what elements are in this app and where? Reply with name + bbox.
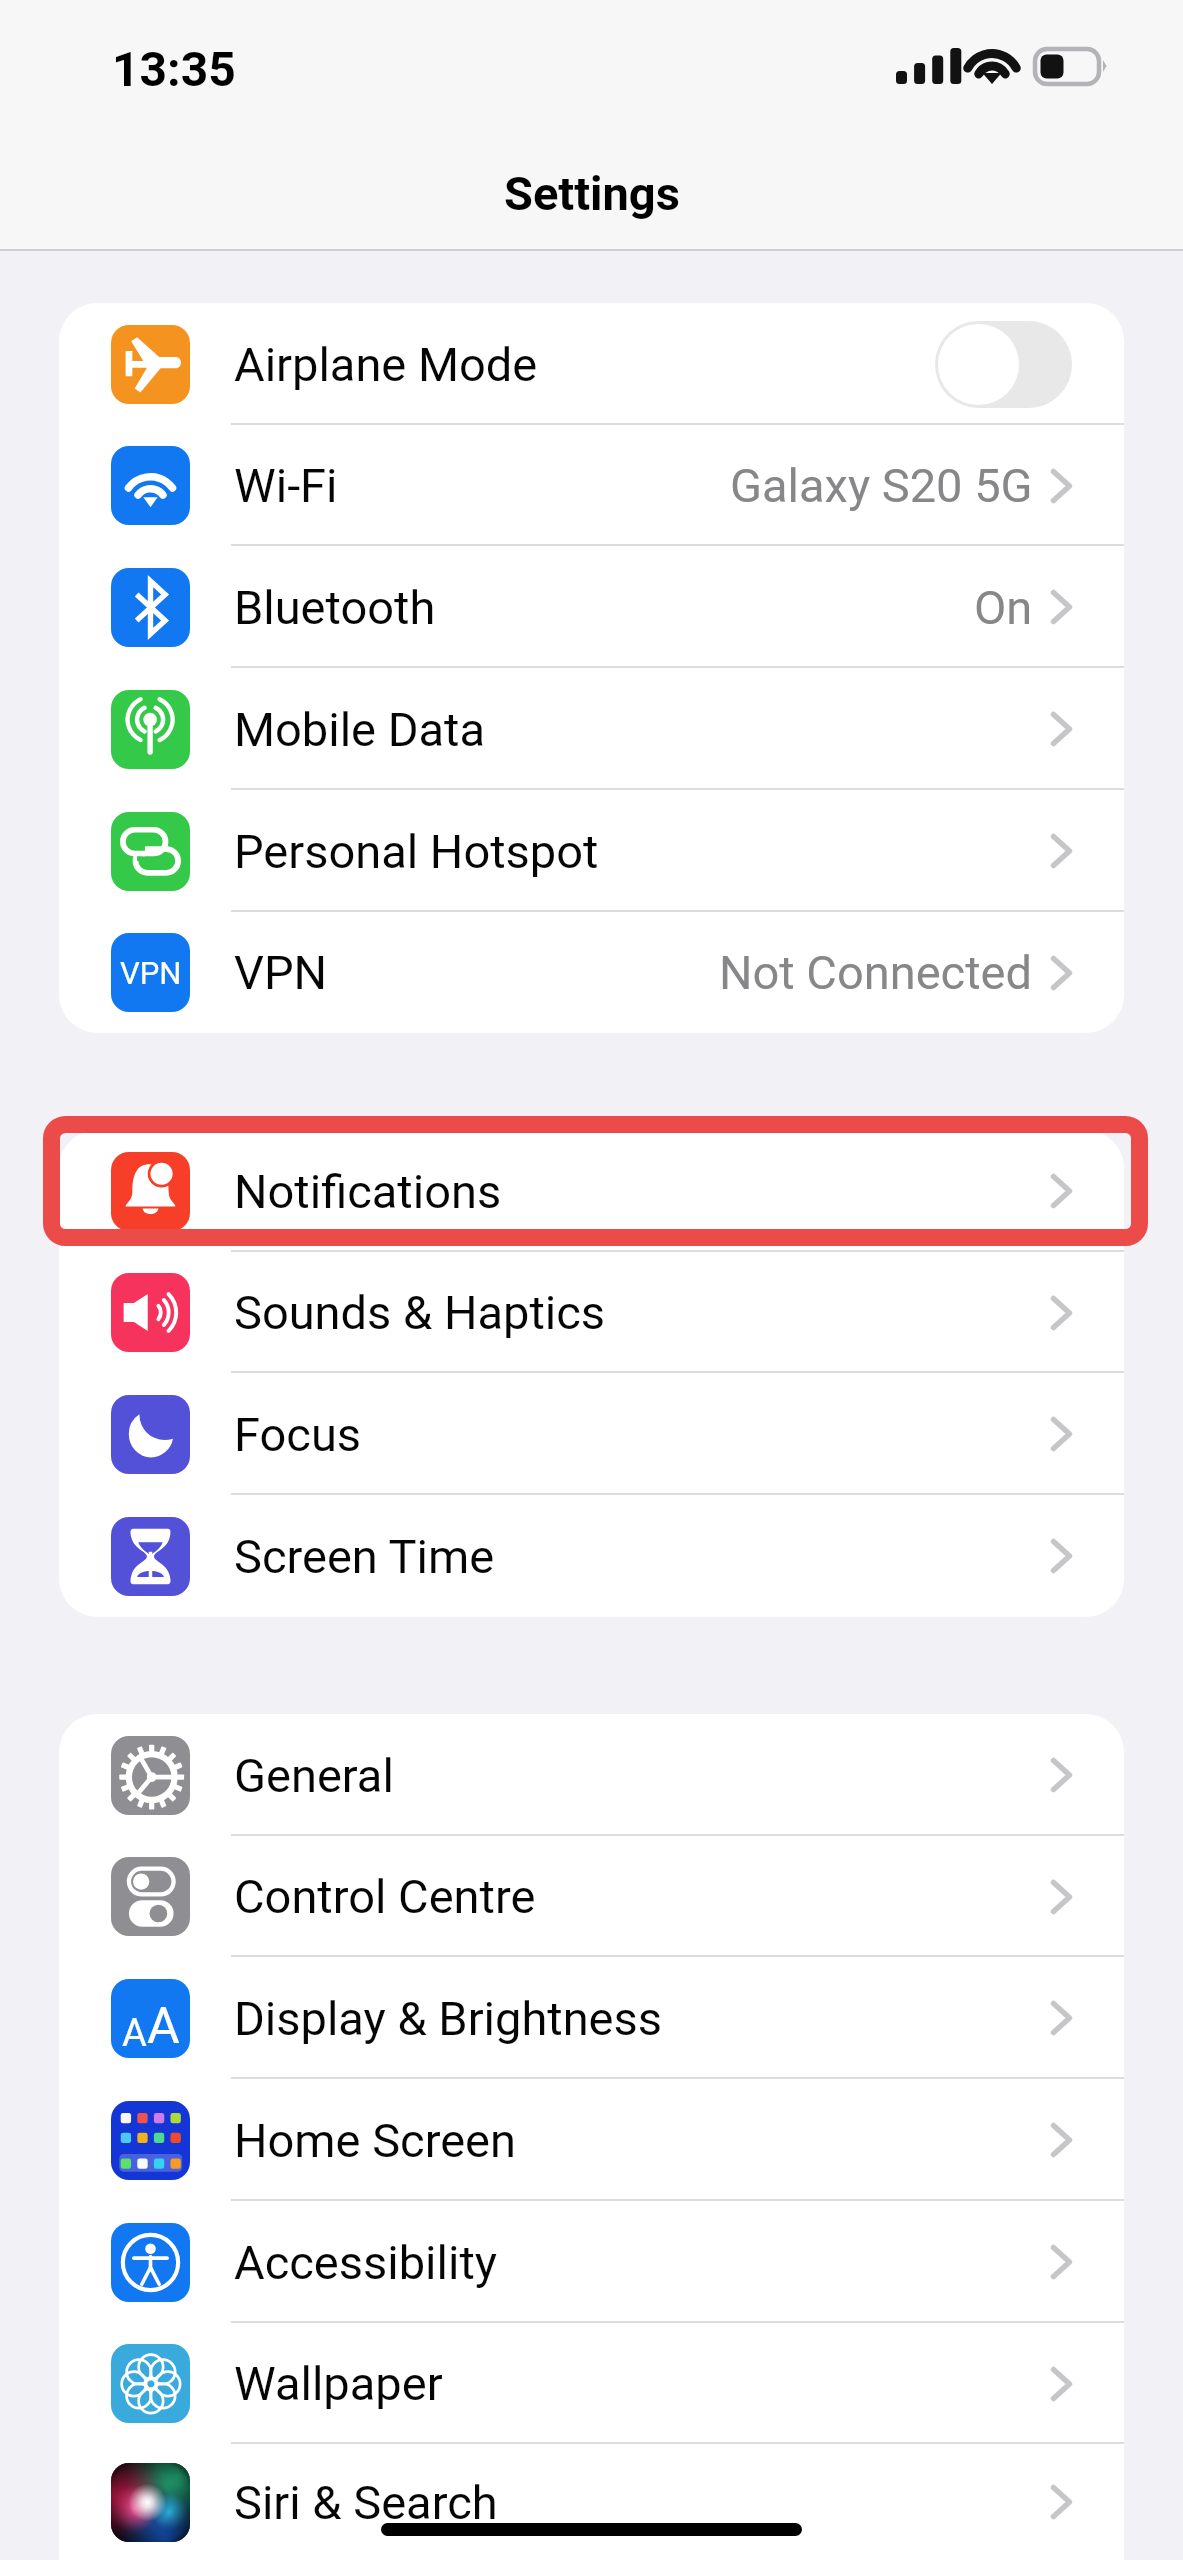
button[interactable]: Wallpaper	[59, 2323, 1124, 2444]
staticText: Settings	[504, 166, 680, 221]
button[interactable]: Screen Time	[59, 1495, 1124, 1617]
button[interactable]: Airplane Mode	[59, 303, 1124, 425]
button[interactable]: VPN	[59, 912, 1124, 1033]
staticText: Wallpaper	[234, 2356, 443, 2411]
other: Highlighted Notifications row	[43, 1116, 1148, 1246]
button[interactable]: Control Centre	[59, 1836, 1124, 1957]
button[interactable]: Bluetooth	[59, 546, 1124, 668]
staticText: Focus	[234, 1407, 362, 1462]
staticText: Galaxy S20 5G	[730, 458, 1033, 513]
staticText: Airplane Mode	[234, 337, 538, 392]
button[interactable]: A	[59, 1957, 1124, 2079]
staticText: A	[147, 1997, 180, 2056]
button[interactable]: Focus	[59, 1373, 1124, 1495]
staticText: Mobile Data	[234, 702, 486, 757]
button[interactable]: Accessibility	[59, 2201, 1124, 2323]
button[interactable]: Sounds & Haptics	[59, 1252, 1124, 1373]
staticText: A	[122, 2011, 147, 2056]
button[interactable]: Siri & Search	[59, 2444, 1124, 2560]
staticText: Wi-Fi	[234, 458, 338, 513]
staticText: VPN	[234, 945, 328, 1000]
button[interactable]: Personal Hotspot	[59, 790, 1124, 912]
staticText: Accessibility	[234, 2235, 498, 2290]
staticText: VPN	[120, 955, 182, 991]
staticText: 13:35	[112, 41, 236, 97]
staticText: On	[974, 580, 1033, 635]
staticText: Sounds & Haptics	[234, 1285, 606, 1340]
button[interactable]: Wi-Fi	[59, 425, 1124, 546]
staticText: Home Screen	[234, 2113, 516, 2168]
button[interactable]: Notifications	[59, 1130, 1124, 1252]
button[interactable]: General	[59, 1714, 1124, 1836]
button[interactable]: Home Screen	[59, 2079, 1124, 2201]
staticText: Notifications	[234, 1164, 502, 1219]
staticText: Not Connected	[719, 945, 1033, 1000]
staticText: Display & Brightness	[234, 1991, 663, 2046]
staticText: Bluetooth	[234, 580, 436, 635]
staticText: General	[234, 1748, 394, 1803]
staticText: Control Centre	[234, 1869, 536, 1924]
button[interactable]: Mobile Data	[59, 668, 1124, 790]
staticText: Personal Hotspot	[234, 824, 599, 879]
staticText: Screen Time	[234, 1529, 495, 1584]
staticText: Siri & Search	[234, 2475, 498, 2530]
